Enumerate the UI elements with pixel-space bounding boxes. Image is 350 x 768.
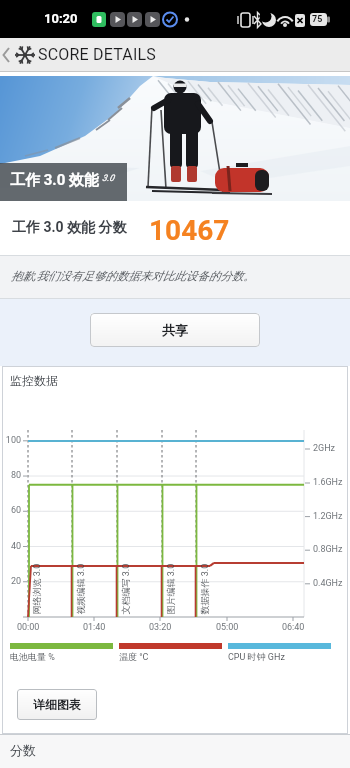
staticText: 2GHz: [313, 443, 336, 454]
staticText: 80: [2, 470, 21, 481]
staticText: 0.8GHz: [313, 544, 343, 555]
staticText: 网络浏览 3.0: [30, 562, 41, 614]
staticText: 40: [2, 541, 21, 552]
staticText: 75: [312, 14, 323, 25]
staticText: 工作 3.0 效能 分数: [12, 219, 127, 237]
staticText: 抱歉,我们没有足够的数据来对比此设备的分数。: [11, 269, 255, 283]
staticText: 0.4GHz: [313, 578, 343, 589]
staticText: 10:20: [44, 11, 78, 26]
staticText: CPU 时钟 GHz: [228, 651, 285, 662]
staticText: 05:00: [216, 622, 239, 633]
staticText: SCORE DETAILS: [38, 45, 157, 64]
staticText: 工作 3.0 效能: [10, 171, 100, 190]
staticText: 1.6GHz: [313, 477, 343, 488]
staticText: 电池电量 %: [10, 651, 55, 662]
staticText: 温度 °C: [119, 651, 149, 662]
button[interactable]: 详细图表: [17, 689, 97, 720]
staticText: 20: [2, 576, 21, 587]
staticText: 图片编辑 3.0: [164, 562, 175, 614]
button[interactable]: SCORE DETAILS: [0, 38, 350, 72]
staticText: 1.2GHz: [313, 511, 343, 522]
staticText: 10467: [149, 214, 230, 247]
staticText: 3.0: [102, 173, 115, 184]
staticText: 03:20: [149, 622, 172, 633]
staticText: 00:00: [17, 622, 40, 633]
staticText: 60: [2, 505, 21, 516]
staticText: 06:40: [282, 622, 305, 633]
staticText: 共享: [162, 322, 188, 338]
staticText: 监控数据: [10, 373, 58, 388]
staticText: 100: [2, 435, 21, 446]
staticText: 视频编辑 3.0: [74, 562, 85, 614]
staticText: 文档编写 3.0: [119, 562, 130, 614]
staticText: 分数: [10, 742, 36, 758]
staticText: 数据操作 3.0: [198, 562, 209, 614]
staticText: 详细图表: [33, 697, 81, 712]
button[interactable]: 共享: [90, 313, 260, 347]
staticText: 01:40: [83, 622, 106, 633]
